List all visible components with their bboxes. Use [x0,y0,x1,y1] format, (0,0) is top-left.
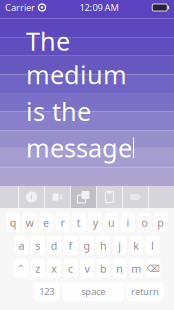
staticText: return [131,285,159,298]
button[interactable]: a [14,236,28,255]
button[interactable]: e [39,213,53,232]
button[interactable]: Speak [45,186,70,208]
button[interactable]: x [47,259,61,278]
button[interactable]: Paste [97,186,122,208]
staticText: h [100,238,107,253]
staticText: space [81,285,105,298]
staticText: a [18,238,24,253]
button[interactable]: Delete [146,259,161,278]
staticText: b [100,261,107,276]
staticText: 123 [39,285,54,298]
button[interactable]: l [146,236,160,255]
button[interactable]: Send [123,186,148,208]
staticText: c [68,261,73,276]
button[interactable]: f [64,236,78,255]
staticText: d [51,238,58,253]
button[interactable]: h [96,236,110,255]
staticText: j [118,238,121,253]
button[interactable]: r [55,213,69,232]
button[interactable]: y [88,213,102,232]
staticText: z [35,261,40,276]
staticText: p [157,215,164,230]
staticText: u [108,215,115,230]
staticText: ⌃ [17,263,25,274]
button[interactable]: g [80,236,94,255]
staticText: Carrier [5,1,35,14]
staticText: o [141,215,147,230]
staticText: ⌫ [147,263,160,274]
button[interactable]: n [113,259,127,278]
staticText: l [151,238,154,253]
staticText: The medium [26,24,127,91]
staticText: s [35,238,40,253]
staticText: k [133,238,139,253]
button[interactable]: Info [19,186,44,208]
button[interactable]: j [113,236,127,255]
staticText: 12:09 AM [80,1,119,14]
button[interactable]: v [80,259,94,278]
staticText: w [26,215,34,230]
staticText: v [84,261,89,276]
staticText: y [93,215,98,230]
button[interactable]: s [31,236,45,255]
staticText: f [69,238,73,253]
button[interactable]: m [129,259,143,278]
staticText: q [10,215,17,230]
button[interactable]: Shift [13,259,28,278]
button[interactable]: p [154,213,168,232]
staticText: r [60,215,64,230]
staticText: e [43,215,49,230]
button[interactable]: space [62,282,124,301]
staticText: n [116,261,123,276]
staticText: g [83,238,90,253]
button[interactable]: o [137,213,151,232]
button[interactable]: w [23,213,37,232]
button[interactable]: u [105,213,119,232]
button[interactable]: c [64,259,78,278]
button[interactable]: i [121,213,135,232]
button[interactable]: t [72,213,86,232]
staticText: i [126,215,129,230]
button[interactable]: return [127,282,164,301]
button[interactable]: z [31,259,45,278]
button[interactable]: k [129,236,143,255]
staticText: m [131,261,141,276]
button[interactable]: q [6,213,20,232]
button[interactable]: d [47,236,61,255]
button[interactable]: b [96,259,110,278]
staticText: t [77,215,81,230]
button[interactable]: Copy [71,186,96,208]
button[interactable]: 123 [34,282,60,301]
staticText: is the [26,94,91,128]
staticText: x [51,261,57,276]
staticText: message [26,131,132,164]
